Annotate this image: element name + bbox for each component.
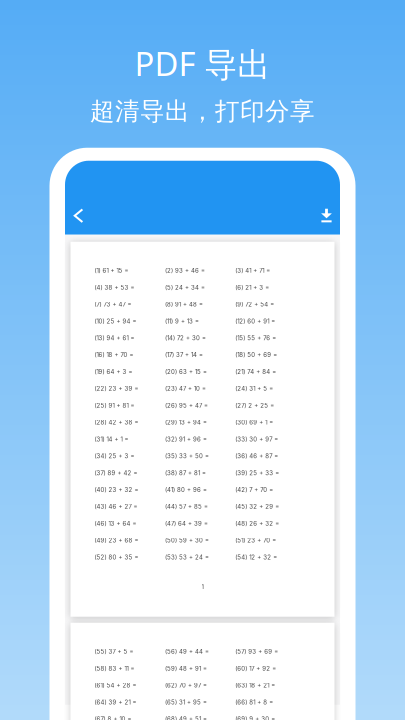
staticText: (60) 17 + 92 = [235, 665, 276, 672]
staticText: (22) 23 + 39 = [94, 385, 138, 392]
staticText: (39) 25 + 33 = [235, 469, 279, 477]
staticText: (66) 81 + 8 = [235, 699, 273, 706]
staticText: (31) 14 + 1 = [94, 436, 128, 443]
staticText: (16) 18 + 70 = [94, 351, 133, 359]
button[interactable]: Download [310, 199, 342, 233]
staticText: (23) 47 + 10 = [165, 385, 206, 392]
staticText: (14) 72 + 30 = [165, 334, 206, 342]
staticText: (42) 7 + 70 = [235, 486, 273, 493]
staticText: (55) 37 + 5 = [94, 648, 133, 655]
staticText: (8) 91 + 48 = [165, 301, 203, 308]
staticText: (3) 41 + 71 = [235, 267, 270, 274]
staticText: (44) 57 + 85 = [165, 503, 208, 510]
staticText: 超清导出，打印分享 [90, 96, 315, 127]
staticText: (26) 95 + 47 = [165, 402, 208, 409]
staticText: (68) 49 + 51 = [165, 715, 207, 720]
staticText: (33) 30 + 97 = [235, 436, 278, 443]
staticText: (35) 33 + 50 = [165, 452, 209, 460]
staticText: (30) 69 + 1 = [235, 419, 273, 426]
staticText: (12) 60 + 91 = [235, 318, 275, 325]
staticText: (50) 59 + 30 = [165, 537, 209, 544]
staticText: (46) 13 + 64 = [94, 520, 136, 527]
staticText: (1) 61 + 15 = [94, 267, 128, 274]
staticText: (41) 80 + 96 = [165, 486, 207, 493]
staticText: (36) 46 + 87 = [235, 452, 278, 460]
staticText: (9) 72 + 54 = [235, 301, 274, 308]
staticText: (17) 37 + 14 = [165, 351, 203, 359]
staticText: PDF 导出 [134, 41, 270, 86]
staticText: (34) 25 + 3 = [94, 452, 134, 460]
staticText: (69) 9 + 30 = [235, 715, 275, 720]
staticText: (4) 38 + 53 = [94, 284, 134, 291]
staticText: (20) 63 + 15 = [165, 368, 207, 375]
staticText: (52) 80 + 35 = [94, 554, 138, 561]
staticText: (18) 50 + 69 = [235, 351, 277, 359]
staticText: (2) 93 + 46 = [165, 267, 205, 274]
staticText: (51) 23 + 70 = [235, 537, 276, 544]
staticText: (19) 64 + 3 = [94, 368, 132, 375]
staticText: (63) 18 + 21 = [235, 682, 275, 689]
staticText: (67) 8 + 10 = [94, 715, 131, 720]
staticText: (65) 31 + 95 = [165, 699, 207, 706]
staticText: (45) 32 + 29 = [235, 503, 279, 510]
staticText: (10) 25 + 94 = [94, 318, 136, 325]
staticText: (58) 83 + 11 = [94, 665, 134, 672]
staticText: (21) 74 + 84 = [235, 368, 276, 375]
staticText: (15) 55 + 76 = [235, 334, 276, 342]
staticText: (56) 49 + 44 = [165, 648, 209, 655]
staticText: (62) 70 + 97 = [165, 682, 207, 689]
staticText: (38) 87 + 81 = [165, 469, 206, 477]
staticText: (13) 94 + 61 = [94, 334, 134, 342]
staticText: (59) 48 + 91 = [165, 665, 207, 672]
staticText: (61) 54 + 28 = [94, 682, 136, 689]
staticText: (37) 89 + 42 = [94, 469, 137, 477]
staticText: (24) 31 + 5 = [235, 385, 273, 392]
staticText: (32) 91 + 96 = [165, 436, 207, 443]
staticText: (40) 23 + 32 = [94, 486, 138, 493]
staticText: (64) 39 + 21 = [94, 699, 136, 706]
staticText: (27) 2 + 25 = [235, 402, 274, 409]
button[interactable]: Back [62, 199, 94, 233]
staticText: (25) 91 + 81 = [94, 402, 134, 409]
staticText: (48) 26 + 32 = [235, 520, 279, 527]
staticText: (49) 23 + 68 = [94, 537, 138, 544]
staticText: (57) 93 + 69 = [235, 648, 278, 655]
staticText: (47) 64 + 39 = [165, 520, 208, 527]
staticText: (28) 42 + 38 = [94, 419, 138, 426]
staticText: (6) 21 + 3 = [235, 284, 269, 291]
staticText: (29) 13 + 94 = [165, 419, 207, 426]
staticText: (5) 24 + 34 = [165, 284, 205, 291]
staticText: (11) 9 + 13 = [165, 318, 199, 325]
staticText: (43) 46 + 27 = [94, 503, 137, 510]
staticText: (7) 73 + 47 = [94, 301, 131, 308]
staticText: 1 [201, 583, 203, 591]
staticText: (53) 53 + 24 = [165, 554, 209, 561]
staticText: (54) 12 + 32 = [235, 554, 277, 561]
